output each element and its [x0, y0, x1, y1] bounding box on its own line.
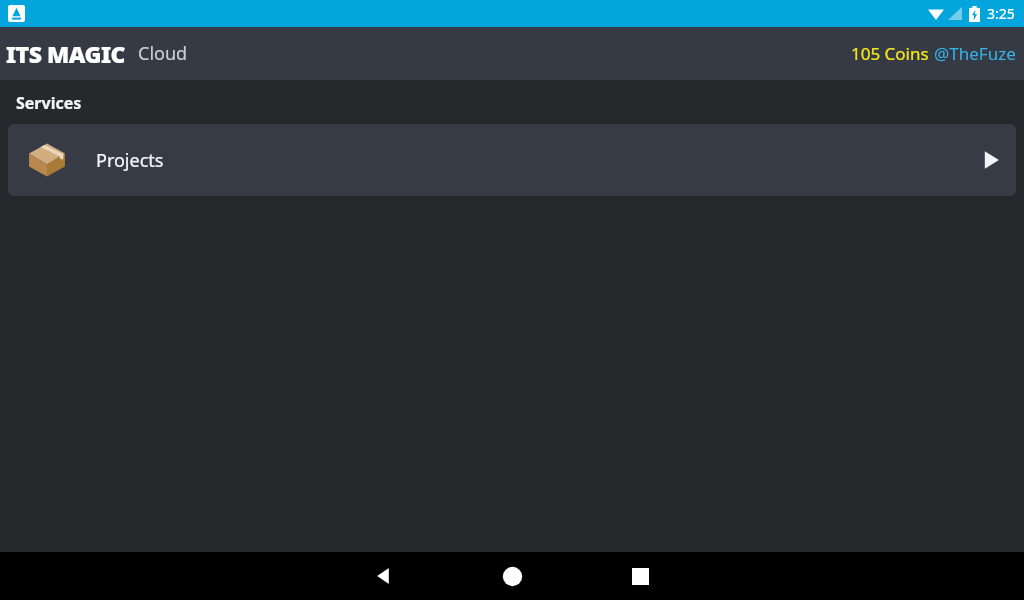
staticText: @TheFuze [934, 42, 1016, 65]
button[interactable]: Recent apps [590, 552, 690, 600]
button[interactable]: Home [462, 552, 562, 600]
other: Projects package [24, 137, 70, 183]
other: Open Projects [980, 149, 1002, 171]
staticText: ITS MAGIC [6, 38, 126, 69]
staticText: Projects [96, 148, 164, 173]
staticText: 3:25 [987, 4, 1015, 23]
button[interactable]: 105 Coins [851, 42, 1016, 65]
staticText: Services [16, 92, 82, 114]
staticText: 105 Coins [851, 42, 934, 65]
button[interactable]: Projects package [8, 124, 1016, 196]
staticText: Cloud [138, 41, 188, 66]
button[interactable]: Back [334, 552, 434, 600]
